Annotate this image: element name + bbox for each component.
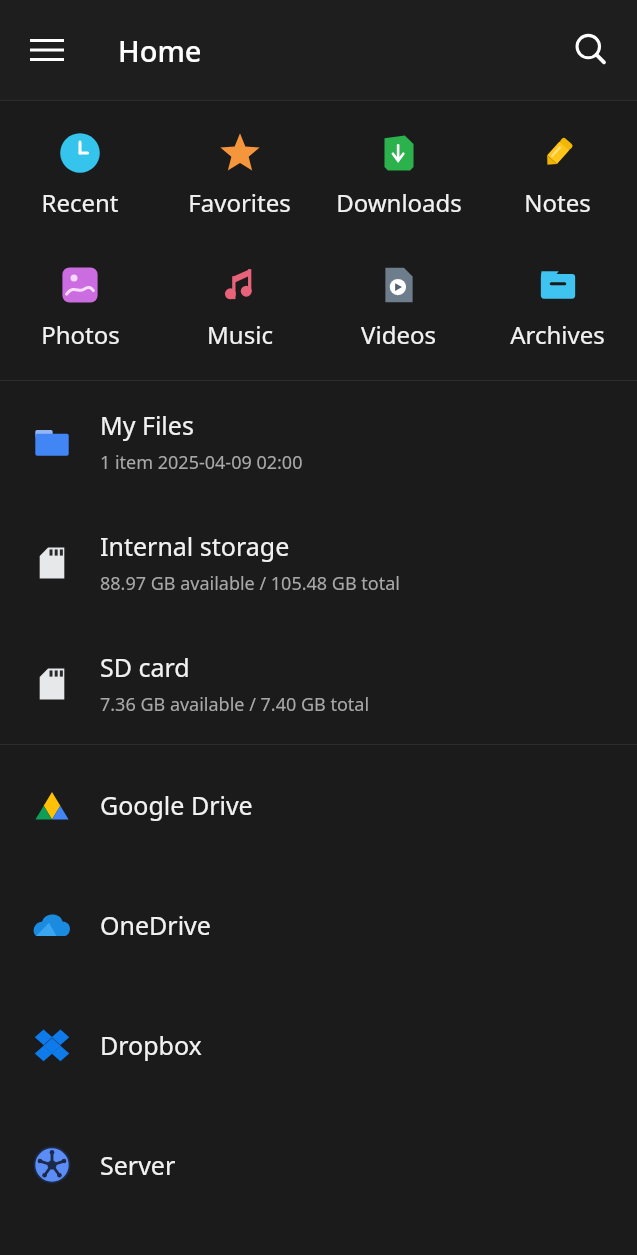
staticText: Videos bbox=[361, 318, 436, 351]
staticText: Home bbox=[118, 31, 202, 70]
button[interactable]: Photos bbox=[0, 259, 160, 355]
staticText: Favorites bbox=[188, 186, 291, 219]
staticText: Music bbox=[207, 318, 273, 351]
button[interactable]: Favorites bbox=[160, 127, 319, 223]
staticText: Server bbox=[100, 1148, 176, 1182]
button[interactable]: Downloads bbox=[319, 127, 478, 223]
button[interactable]: Videos bbox=[319, 259, 478, 355]
staticText: 1 item 2025-04-09 02:00 bbox=[100, 450, 303, 475]
staticText: 7.36 GB available / 7.40 GB total bbox=[100, 692, 370, 717]
button[interactable]: Music bbox=[160, 259, 319, 355]
staticText: Archives bbox=[510, 318, 605, 351]
staticText: My Files bbox=[100, 408, 194, 442]
staticText: Recent bbox=[41, 186, 119, 219]
button[interactable]: Search bbox=[561, 20, 621, 80]
button[interactable]: Internal storage bbox=[0, 502, 637, 623]
staticText: Google Drive bbox=[100, 788, 253, 822]
button[interactable]: Recent bbox=[0, 127, 160, 223]
staticText: Dropbox bbox=[100, 1028, 202, 1062]
button[interactable]: Notes bbox=[478, 127, 637, 223]
button[interactable]: OneDrive bbox=[0, 865, 637, 985]
button[interactable]: My Files bbox=[0, 381, 637, 502]
staticText: 88.97 GB available / 105.48 GB total bbox=[100, 571, 400, 596]
button[interactable]: Google Drive bbox=[0, 745, 637, 865]
button[interactable]: Archives bbox=[478, 259, 637, 355]
staticText: Downloads bbox=[336, 186, 462, 219]
button[interactable]: SD card bbox=[0, 623, 637, 744]
button[interactable]: Open navigation menu bbox=[18, 21, 76, 79]
staticText: OneDrive bbox=[100, 908, 211, 942]
staticText: SD card bbox=[100, 650, 190, 684]
staticText: Notes bbox=[524, 186, 591, 219]
staticText: Internal storage bbox=[100, 529, 290, 563]
button[interactable]: Server bbox=[0, 1105, 637, 1225]
staticText: Photos bbox=[41, 318, 120, 351]
button[interactable]: Dropbox bbox=[0, 985, 637, 1105]
